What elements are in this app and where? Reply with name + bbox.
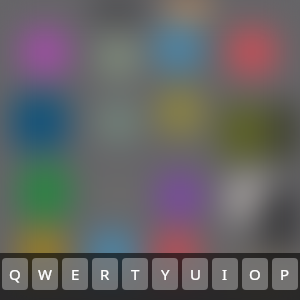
staticText: I	[222, 264, 228, 284]
button[interactable]: I	[212, 258, 238, 290]
button[interactable]: U	[182, 258, 208, 290]
button[interactable]: T	[122, 258, 148, 290]
staticText: O	[249, 264, 261, 284]
staticText: E	[71, 264, 80, 284]
staticText: U	[190, 264, 201, 284]
button[interactable]: E	[62, 258, 88, 290]
staticText: W	[38, 264, 52, 284]
staticText: P	[280, 264, 290, 284]
button[interactable]: R	[92, 258, 118, 290]
button[interactable]: O	[242, 258, 268, 290]
staticText: R	[100, 264, 110, 284]
button[interactable]: P	[272, 258, 298, 290]
button[interactable]: Q	[2, 258, 28, 290]
button[interactable]: Y	[152, 258, 178, 290]
staticText: Q	[9, 264, 21, 284]
button[interactable]: W	[32, 258, 58, 290]
staticText: T	[131, 264, 140, 284]
staticText: Y	[161, 264, 170, 284]
